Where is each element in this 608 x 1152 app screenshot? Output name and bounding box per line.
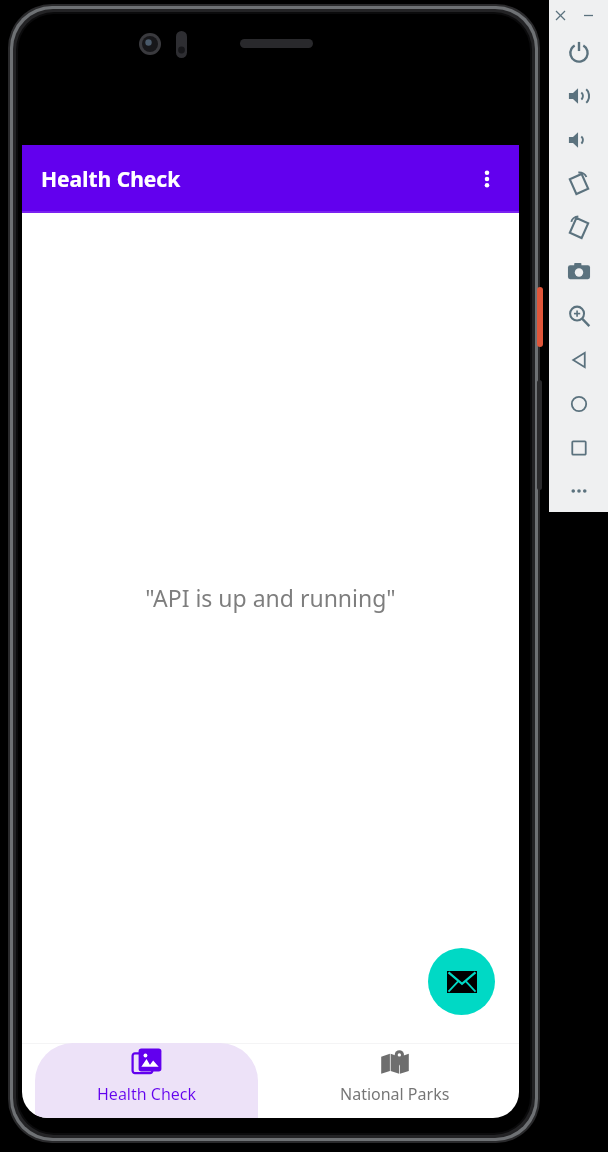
button[interactable]: Minimize [577, 4, 599, 26]
button[interactable]: Zoom [549, 294, 608, 338]
button[interactable]: More options [463, 155, 511, 203]
button[interactable]: Volume down [549, 118, 608, 162]
button[interactable]: Rotate left [549, 162, 608, 206]
button[interactable]: Send email [428, 948, 495, 1015]
button[interactable]: National Parks [283, 1043, 507, 1118]
button[interactable]: Rotate right [549, 206, 608, 250]
staticText: National Parks [340, 1083, 450, 1105]
button[interactable]: Close [549, 4, 571, 26]
button[interactable]: Health Check [35, 1043, 258, 1118]
button[interactable]: Back [549, 338, 608, 382]
button[interactable]: More [549, 470, 608, 512]
button[interactable]: Power [549, 30, 608, 74]
staticText: Health Check [97, 1083, 197, 1105]
button[interactable]: Volume up [549, 74, 608, 118]
staticText: "API is up and running" [145, 582, 396, 613]
button[interactable]: Home [549, 382, 608, 426]
button[interactable]: Recents [549, 426, 608, 470]
button[interactable]: Screenshot [549, 250, 608, 294]
staticText: Health Check [41, 165, 181, 194]
